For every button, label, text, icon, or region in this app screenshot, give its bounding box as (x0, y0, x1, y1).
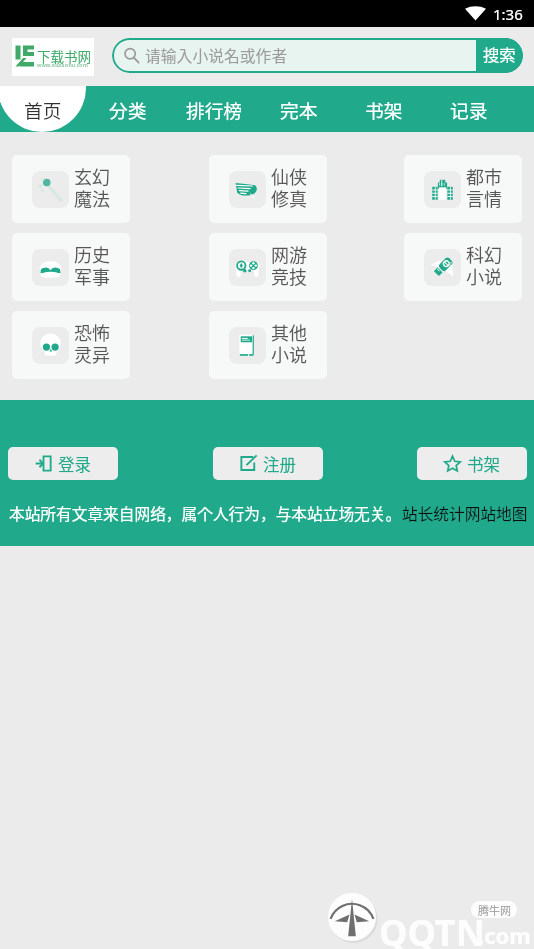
staticText: QQTN (379, 908, 485, 949)
staticText: 站长统计网站地图 (402, 502, 528, 525)
staticText: 1:36 (493, 4, 523, 24)
button[interactable]: 网游 竞技 (209, 233, 327, 301)
staticText: 排行榜 (186, 96, 243, 123)
staticText: 请输入小说名或作者 (145, 44, 288, 67)
button[interactable]: 玄幻 魔法 (12, 155, 130, 223)
button[interactable]: 注册 (213, 447, 323, 480)
staticText: 恐怖 灵异 (74, 319, 110, 367)
staticText: 首页 (24, 96, 62, 123)
button[interactable]: Site logo, home (12, 38, 94, 76)
staticText: 腾牛网 (478, 902, 511, 918)
staticText: 玄幻 魔法 (74, 163, 110, 211)
button[interactable]: 其他 小说 (209, 311, 327, 379)
staticText: 书架 (467, 452, 500, 476)
button[interactable]: 记录 (427, 86, 511, 132)
button[interactable]: 请输入小说名或作者 (112, 38, 523, 73)
button[interactable]: 登录 (8, 447, 118, 480)
staticText: 仙侠 修真 (271, 163, 307, 211)
staticText: 书架 (365, 96, 403, 123)
staticText: 本站所有文章来自网络，属个人行为，与本站立场无关。 (9, 502, 402, 525)
button[interactable]: 首页 (1, 86, 85, 132)
staticText: 注册 (263, 452, 296, 476)
button[interactable]: 恐怖 灵异 (12, 311, 130, 379)
staticText: 都市 言情 (466, 163, 502, 211)
button[interactable]: 完本 (257, 86, 341, 132)
staticText: 其他 小说 (271, 319, 307, 367)
staticText: 科幻 小说 (466, 241, 502, 289)
button[interactable]: 书架 (342, 86, 426, 132)
staticText: 完本 (280, 96, 318, 123)
staticText: .com (478, 920, 531, 949)
button[interactable]: 排行榜 (172, 86, 256, 132)
button[interactable]: 仙侠 修真 (209, 155, 327, 223)
button[interactable]: 科幻 小说 (404, 233, 522, 301)
button[interactable]: 书架 (417, 447, 527, 480)
button[interactable]: 都市 言情 (404, 155, 522, 223)
staticText: 分类 (109, 96, 147, 123)
button[interactable]: 搜索 (476, 38, 523, 73)
staticText: www.xiazaishu.com (37, 61, 88, 69)
button[interactable]: 分类 (86, 86, 170, 132)
staticText: 网游 竞技 (271, 241, 307, 289)
staticText: 记录 (450, 96, 488, 123)
staticText: 搜索 (483, 42, 516, 66)
staticText: 登录 (58, 452, 91, 476)
staticText: 下载书网 (37, 46, 91, 66)
button[interactable]: 历史 军事 (12, 233, 130, 301)
staticText: 历史 军事 (74, 241, 110, 289)
